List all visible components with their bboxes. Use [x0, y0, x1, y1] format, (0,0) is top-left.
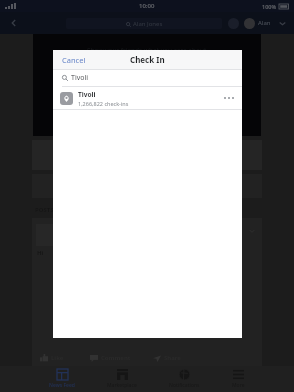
staticText: Show your friends what you care about — [87, 46, 207, 55]
staticText: POSTS — [35, 206, 54, 214]
button[interactable]: Comment — [88, 352, 133, 364]
button[interactable]: Back — [6, 15, 22, 31]
button[interactable]: Profile — [244, 18, 255, 29]
button[interactable]: Menu — [276, 17, 288, 29]
button[interactable]: News Feed — [45, 367, 79, 391]
staticText: 1,266,822 check-ins — [78, 100, 129, 107]
staticText: 100% — [262, 3, 277, 10]
button[interactable]: More options — [223, 92, 235, 104]
button[interactable] — [120, 60, 174, 72]
staticText: News Feed — [49, 382, 75, 389]
staticText: Tivoli — [71, 73, 89, 83]
staticText: 10:00 — [139, 2, 155, 10]
button[interactable]: Cancel — [53, 52, 95, 68]
staticText: Tivoli — [78, 90, 96, 99]
button[interactable]: Alan Jones — [66, 18, 222, 29]
staticText: Alan — [258, 19, 271, 27]
staticText: Cancel — [62, 55, 86, 65]
staticText: Alan Jones — [133, 20, 163, 28]
button[interactable]: Tivoli — [53, 70, 242, 86]
button[interactable]: Messenger — [228, 18, 239, 29]
staticText: Check In — [130, 54, 165, 65]
button[interactable]: Like — [38, 352, 66, 364]
button[interactable]: Tivoli — [53, 87, 242, 109]
button[interactable]: Marketplace — [103, 367, 141, 391]
staticText: Hi — [37, 249, 44, 257]
button[interactable]: More — [228, 367, 249, 391]
